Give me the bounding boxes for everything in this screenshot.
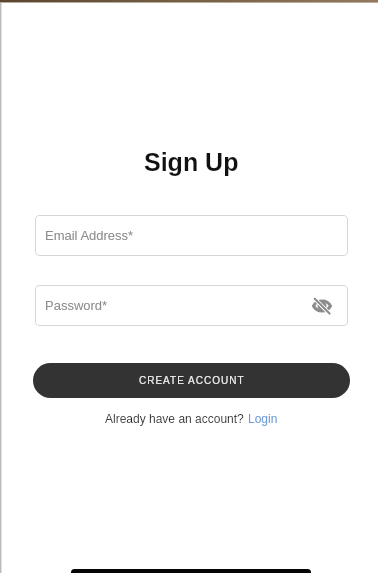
button[interactable]: CREATE ACCOUNT	[33, 363, 350, 398]
staticText: Already have an account?	[105, 412, 248, 425]
button[interactable]: Toggle password visibility	[310, 294, 334, 318]
button[interactable]: Email Address*	[35, 215, 348, 256]
staticText: Password*	[45, 298, 108, 313]
staticText: Email Address*	[45, 228, 134, 243]
staticText: Login	[248, 412, 278, 425]
button[interactable]: Login	[248, 412, 278, 425]
staticText: Sign Up	[144, 148, 239, 176]
button[interactable]: Home	[71, 569, 311, 573]
staticText: CREATE ACCOUNT	[139, 375, 245, 386]
button[interactable]: Password*	[35, 285, 348, 326]
